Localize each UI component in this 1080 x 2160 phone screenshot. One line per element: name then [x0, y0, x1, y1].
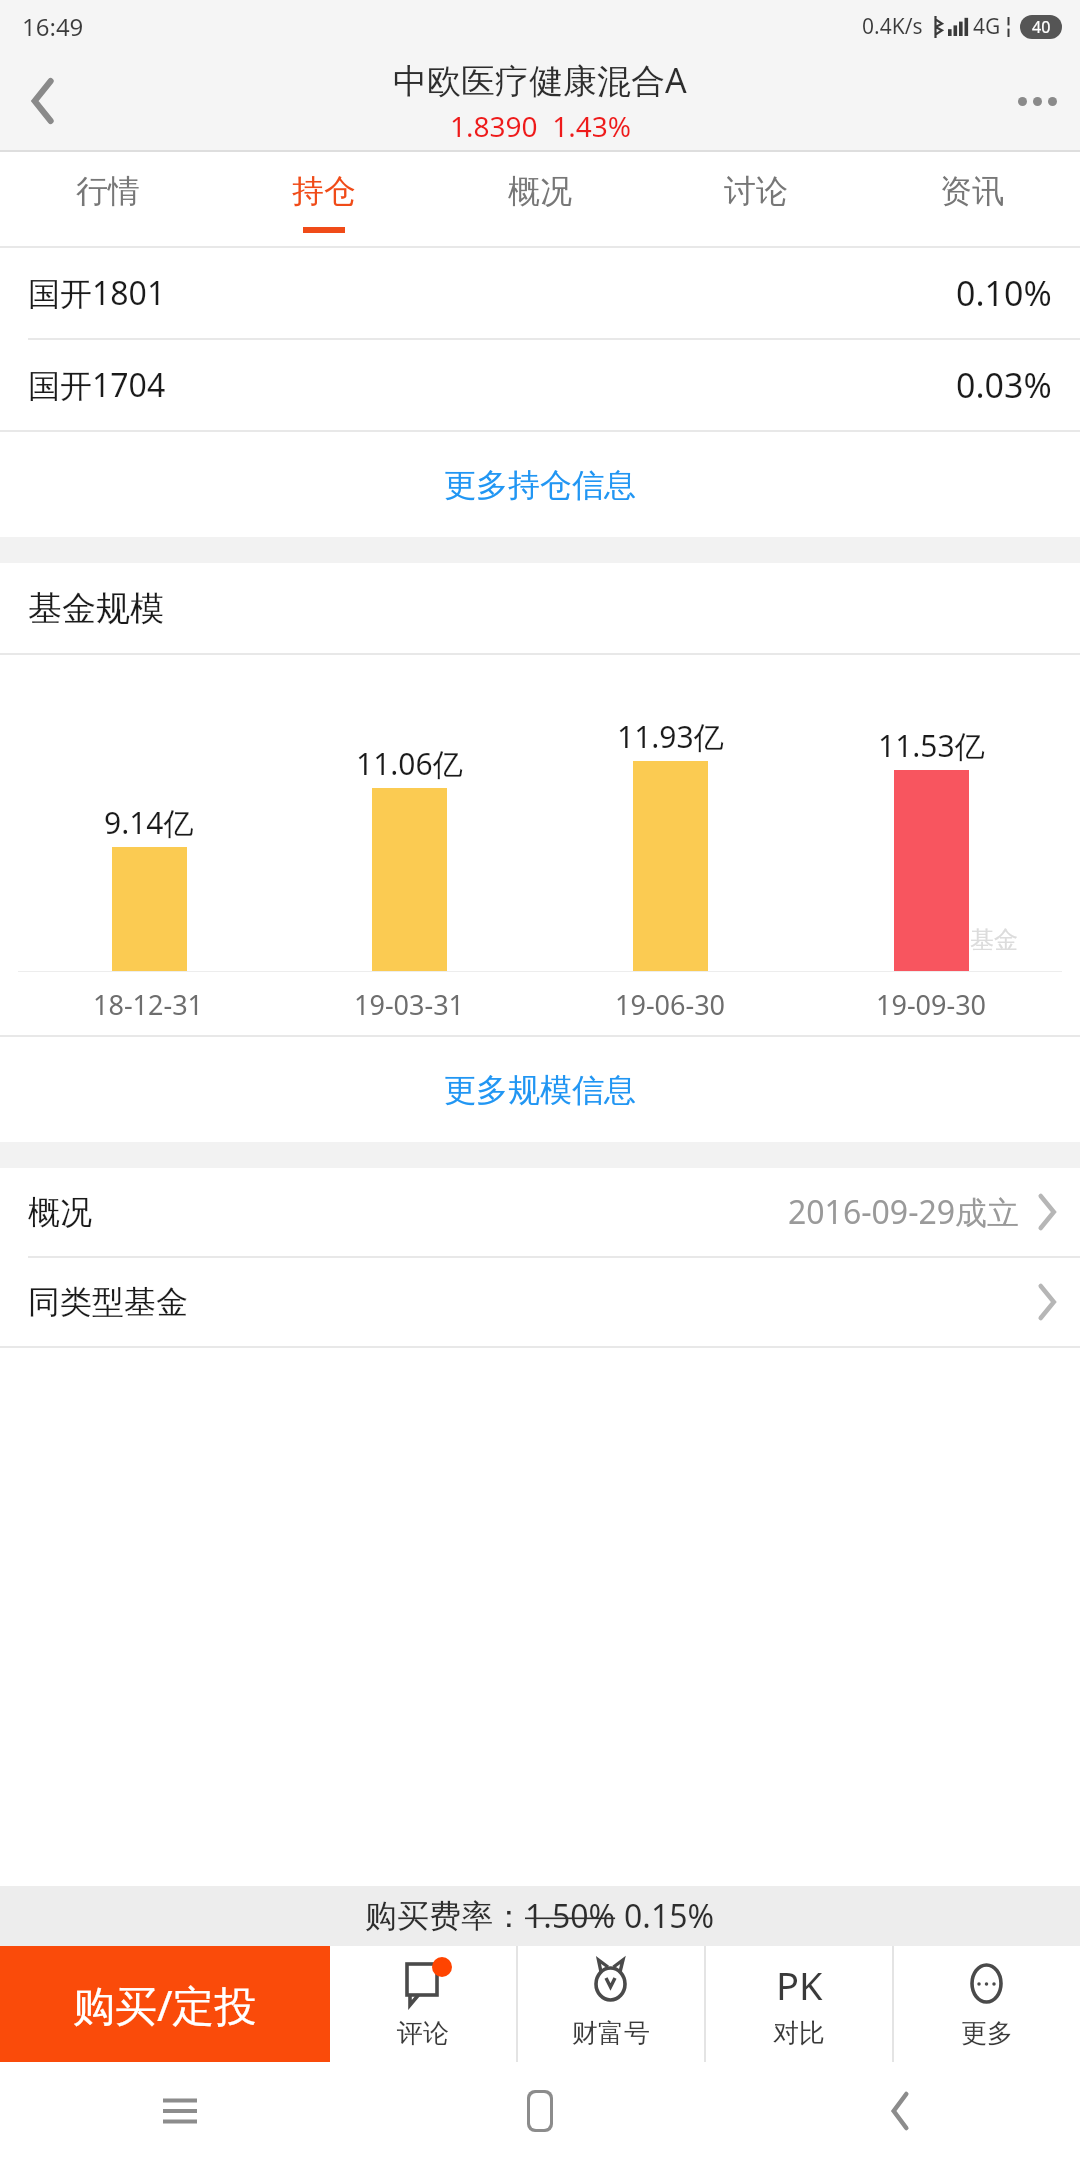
staticText: 国开1801	[28, 271, 166, 315]
button[interactable]: More options	[994, 58, 1080, 144]
staticText: 19-09-30	[876, 986, 987, 1023]
staticText: 0.15%	[624, 1894, 715, 1938]
staticText: 更多	[961, 2017, 1013, 2050]
staticText: 购买/定投	[73, 1976, 257, 2033]
button[interactable]: 更多	[894, 1946, 1080, 2062]
staticText: 18-12-31	[93, 986, 204, 1023]
staticText: 11.93亿	[617, 716, 724, 757]
staticText: 40	[1032, 16, 1051, 38]
staticText: 讨论	[724, 171, 788, 211]
button[interactable]: PK	[706, 1946, 892, 2062]
button[interactable]: 行情	[0, 152, 216, 246]
staticText: 11.06亿	[356, 743, 463, 784]
staticText: 基金规模	[28, 587, 164, 630]
button[interactable]: 持仓	[216, 152, 432, 246]
button[interactable]: 国开1704	[0, 340, 1080, 430]
staticText: 国开1704	[28, 363, 166, 407]
button[interactable]: 更多持仓信息	[0, 432, 1080, 537]
staticText: PK	[776, 1959, 823, 2009]
staticText: 概况	[508, 171, 572, 211]
staticText: 评论	[397, 2017, 449, 2050]
staticText: 购买费率：	[365, 1896, 525, 1936]
staticText: 中欧医疗健康混合A	[393, 57, 687, 103]
staticText: 16:49	[22, 10, 84, 43]
staticText: 同类型基金	[28, 1282, 188, 1322]
staticText: 0.4K/s	[862, 12, 923, 41]
staticText: 0.03%	[956, 362, 1052, 408]
staticText: 4G	[973, 12, 1001, 41]
staticText: 天天基金	[922, 925, 1018, 955]
button[interactable]: 概况	[432, 152, 648, 246]
button[interactable]: Back	[0, 58, 86, 144]
staticText: 2016-09-29成立	[788, 1190, 1020, 1234]
button[interactable]: Home	[360, 2062, 720, 2160]
staticText: 行情	[76, 171, 140, 211]
button[interactable]: 财富号	[518, 1946, 704, 2062]
staticText: 9.14亿	[104, 802, 194, 843]
staticText: 更多规模信息	[444, 1070, 636, 1110]
staticText: 更多持仓信息	[444, 465, 636, 505]
staticText: 对比	[773, 2017, 825, 2050]
staticText: 19-06-30	[615, 986, 726, 1023]
staticText: 11.53亿	[878, 725, 985, 766]
button[interactable]: 讨论	[648, 152, 864, 246]
button[interactable]: 评论	[330, 1946, 516, 2062]
staticText: 1.50%	[525, 1894, 616, 1938]
button[interactable]: Recents	[0, 2062, 360, 2160]
staticText: 19-03-31	[354, 986, 465, 1023]
button[interactable]: Back	[720, 2062, 1080, 2160]
button[interactable]: 同类型基金	[0, 1258, 1080, 1346]
staticText: 资讯	[940, 171, 1004, 211]
button[interactable]: 国开1801	[0, 248, 1080, 338]
staticText: 0.10%	[956, 270, 1052, 316]
staticText: 持仓	[292, 171, 356, 211]
button[interactable]: 更多规模信息	[0, 1037, 1080, 1142]
button[interactable]: 概况	[0, 1168, 1080, 1256]
button[interactable]: 资讯	[864, 152, 1080, 246]
staticText: 概况	[28, 1192, 92, 1232]
staticText: 1.8390 1.43%	[450, 107, 631, 145]
button[interactable]: 购买/定投	[0, 1946, 330, 2062]
staticText: 财富号	[572, 2017, 650, 2050]
